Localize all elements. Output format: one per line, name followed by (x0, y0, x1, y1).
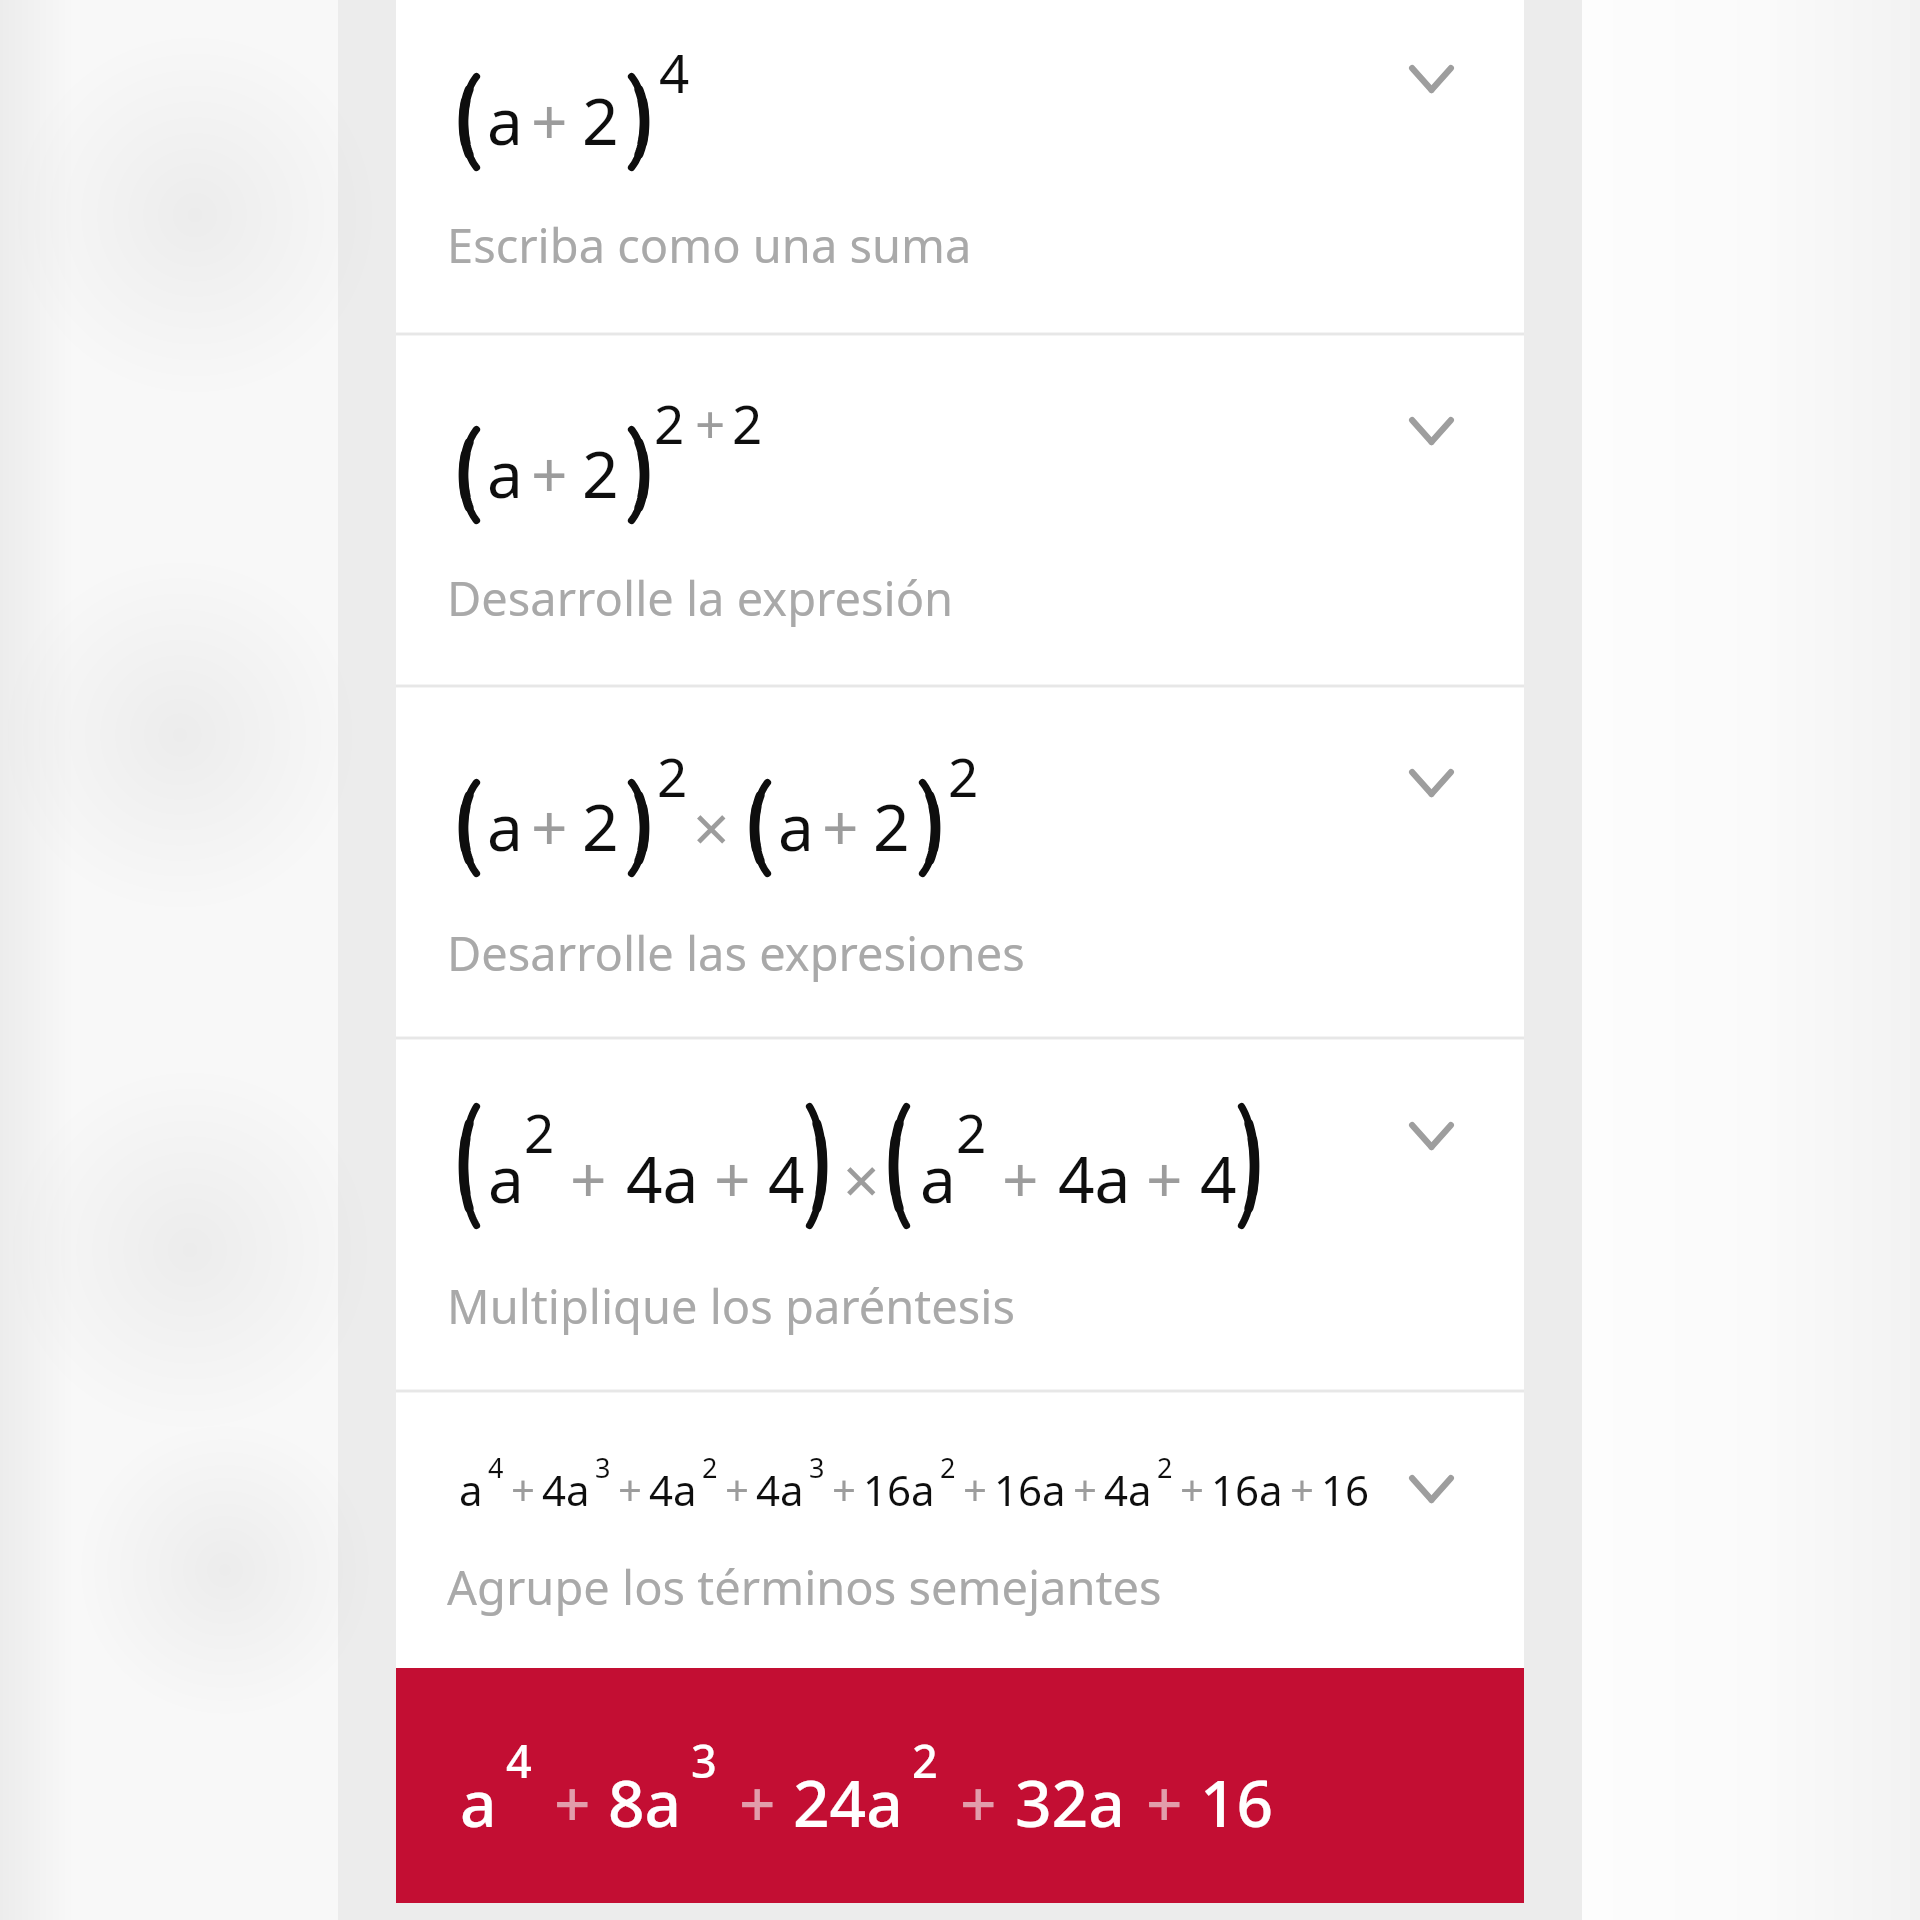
staticText: 4a (1058, 1135, 1131, 1222)
staticText: + (822, 783, 859, 870)
staticText: × (843, 1136, 880, 1223)
button[interactable] (396, 1391, 1524, 1668)
staticText: 2 (702, 1449, 718, 1486)
button[interactable]: Expand step (1409, 65, 1454, 93)
staticText: + (1146, 1759, 1183, 1846)
staticText: Multiplique los paréntesis (447, 1274, 1015, 1338)
staticText: 2 (1157, 1449, 1173, 1486)
staticText: 4 (488, 1449, 504, 1486)
staticText: × (693, 784, 730, 871)
staticText: + (725, 1461, 750, 1518)
staticText: 2 (948, 740, 979, 812)
staticText: 2 (524, 1096, 555, 1168)
staticText: 2 (582, 783, 619, 870)
staticText: a (488, 1135, 524, 1222)
button[interactable]: Expand step (1409, 1475, 1454, 1503)
staticText: 16 (1200, 1759, 1274, 1846)
staticText: + (960, 1759, 997, 1846)
staticText: + (739, 1759, 776, 1846)
staticText: a (459, 1461, 483, 1518)
staticText: 2 (956, 1096, 987, 1168)
staticText: + (1180, 1461, 1205, 1518)
staticText: a (920, 1135, 956, 1222)
staticText: + (1290, 1461, 1315, 1518)
staticText: + (618, 1461, 643, 1518)
staticText: a (778, 783, 814, 870)
staticText: 2 (582, 77, 619, 164)
staticText: 4 (1200, 1135, 1237, 1222)
staticText: + (832, 1461, 857, 1518)
staticText: + (554, 1759, 591, 1846)
staticText: 4 (659, 36, 690, 108)
staticText: 24a (793, 1759, 903, 1846)
staticText: a (487, 77, 523, 164)
staticText: + (531, 430, 568, 517)
staticText: 2 (582, 430, 619, 517)
staticText: + (511, 1461, 536, 1518)
staticText: + (531, 77, 568, 164)
staticText: + (1146, 1135, 1183, 1222)
staticText: Desarrolle la expresión (447, 566, 954, 630)
staticText: 16 (1321, 1461, 1370, 1518)
staticText: 2 (654, 387, 685, 459)
staticText: 2 (657, 740, 688, 812)
staticText: 4a (1104, 1461, 1152, 1518)
staticText: 16a (1211, 1461, 1283, 1518)
button[interactable]: Expand step (1409, 769, 1454, 797)
staticText: 16a (863, 1461, 935, 1518)
staticText: 3 (691, 1730, 717, 1791)
staticText: + (1002, 1135, 1039, 1222)
staticText: + (570, 1135, 607, 1222)
staticText: a (487, 783, 523, 870)
staticText: Escriba como una suma (447, 213, 972, 277)
staticText: + (963, 1461, 988, 1518)
button[interactable] (396, 1668, 1524, 1903)
staticText: 4 (506, 1730, 532, 1791)
button[interactable] (396, 334, 1524, 686)
staticText: 8a (608, 1759, 682, 1846)
button[interactable] (396, 686, 1524, 1038)
button[interactable] (396, 1038, 1524, 1391)
staticText: a (460, 1759, 497, 1846)
staticText: 4a (542, 1461, 590, 1518)
staticText: 32a (1015, 1759, 1125, 1846)
staticText: 2 (940, 1449, 956, 1486)
staticText: 4a (756, 1461, 804, 1518)
staticText: 2 (732, 387, 763, 459)
staticText: 2 (873, 783, 910, 870)
staticText: a (487, 430, 523, 517)
staticText: 4a (626, 1135, 699, 1222)
staticText: 4 (768, 1135, 805, 1222)
staticText: + (1073, 1461, 1098, 1518)
staticText: 3 (595, 1449, 611, 1486)
staticText: 4a (649, 1461, 697, 1518)
staticText: + (695, 387, 726, 459)
staticText: 16a (994, 1461, 1066, 1518)
staticText: Agrupe los términos semejantes (447, 1555, 1162, 1619)
staticText: 2 (912, 1730, 938, 1791)
staticText: + (714, 1135, 751, 1222)
button[interactable] (396, 0, 1524, 334)
staticText: + (531, 783, 568, 870)
staticText: Desarrolle las expresiones (447, 921, 1025, 985)
button[interactable]: Expand step (1409, 417, 1454, 445)
staticText: 3 (809, 1449, 825, 1486)
button[interactable]: Expand step (1409, 1122, 1454, 1150)
